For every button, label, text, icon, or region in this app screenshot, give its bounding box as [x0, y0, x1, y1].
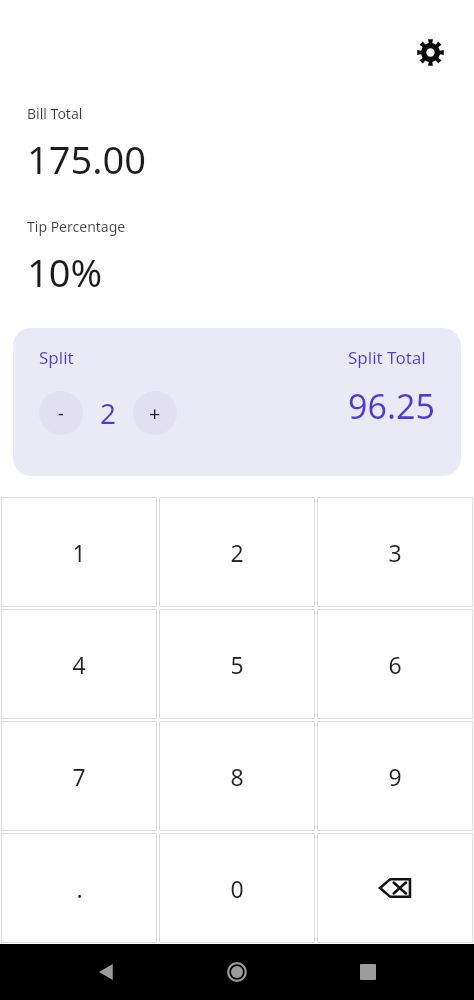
staticText: 7 [72, 761, 86, 792]
button[interactable]: 1 [2, 498, 156, 606]
staticText: 9 [388, 761, 402, 792]
button[interactable]: . [2, 834, 156, 942]
staticText: Tip Percentage [27, 217, 126, 236]
button[interactable]: 4 [2, 610, 156, 718]
staticText: 175.00 [27, 133, 146, 185]
staticText: 96.25 [348, 383, 435, 429]
button[interactable]: 7 [2, 722, 156, 830]
staticText: + [149, 400, 161, 427]
staticText: 5 [230, 649, 244, 680]
button[interactable]: Back [83, 948, 131, 996]
staticText: Split [39, 346, 74, 369]
button[interactable]: Backspace [318, 834, 472, 942]
button[interactable]: 8 [160, 722, 314, 830]
button[interactable]: Home [213, 948, 261, 996]
staticText: 4 [72, 649, 86, 680]
staticText: Split Total [348, 346, 426, 369]
staticText: 0 [230, 873, 244, 904]
button[interactable]: Increase split [133, 391, 177, 435]
button[interactable]: 9 [318, 722, 472, 830]
staticText: 1 [72, 537, 86, 568]
staticText: 3 [388, 537, 402, 568]
staticText: 2 [230, 537, 244, 568]
button[interactable]: 5 [160, 610, 314, 718]
button[interactable]: 2 [160, 498, 314, 606]
button[interactable]: 6 [318, 610, 472, 718]
staticText: 6 [388, 649, 402, 680]
staticText: 2 [100, 394, 117, 432]
button[interactable]: Recent apps [344, 948, 392, 996]
button[interactable]: Decrease split [39, 391, 83, 435]
button[interactable]: 0 [160, 834, 314, 942]
other: Backspace [378, 871, 412, 905]
staticText: . [76, 873, 83, 904]
button[interactable]: 3 [318, 498, 472, 606]
button[interactable]: Settings [408, 30, 452, 74]
staticText: 8 [230, 761, 244, 792]
staticText: Bill Total [27, 104, 83, 123]
staticText: - [58, 401, 64, 426]
staticText: 10% [27, 246, 103, 298]
